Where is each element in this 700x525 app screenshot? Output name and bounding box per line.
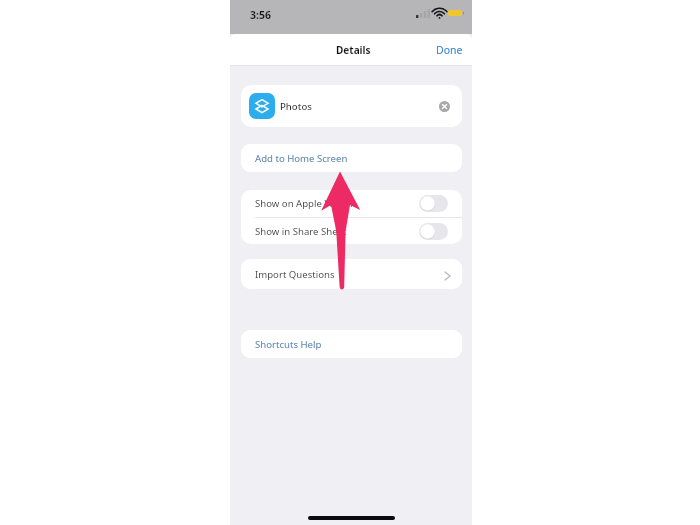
staticText: Photos: [280, 100, 312, 113]
staticText: Shortcuts Help: [255, 338, 322, 351]
staticText: Details: [336, 43, 371, 57]
button[interactable]: Show in Share Sheet: [241, 218, 462, 244]
staticText: Add to Home Screen: [255, 152, 348, 165]
staticText: 3:56: [250, 8, 271, 22]
button[interactable]: Import Questions: [241, 259, 462, 289]
staticText: Show in Share Sheet: [255, 225, 347, 238]
button[interactable]: Clear: [433, 95, 455, 117]
button[interactable]: Done: [427, 36, 472, 64]
button[interactable]: Add to Home Screen: [241, 144, 462, 172]
button[interactable]: Shortcuts Help: [241, 330, 462, 358]
staticText: Show on Apple Watch: [255, 197, 353, 210]
button[interactable]: Photos: [241, 85, 462, 127]
button[interactable]: Show on Apple Watch: [241, 190, 462, 217]
staticText: Done: [436, 43, 463, 57]
staticText: Import Questions: [255, 268, 335, 281]
